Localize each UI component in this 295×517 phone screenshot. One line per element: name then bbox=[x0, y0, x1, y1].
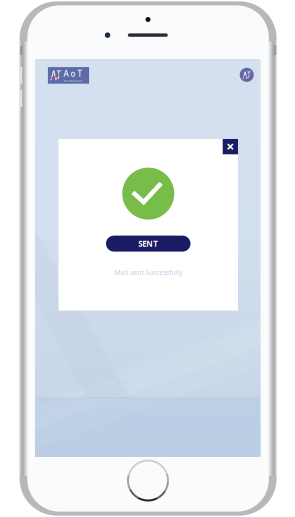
staticText: Mail sent Successfully bbox=[114, 268, 182, 277]
staticText: A o T bbox=[63, 68, 81, 79]
button[interactable]: Close bbox=[223, 139, 238, 154]
staticText: TECHNOLOGIES bbox=[63, 79, 81, 82]
button[interactable]: A o T bbox=[48, 67, 89, 84]
staticText: SENT bbox=[138, 238, 158, 249]
button[interactable]: Account bbox=[240, 68, 254, 82]
button[interactable]: SENT bbox=[106, 236, 190, 252]
